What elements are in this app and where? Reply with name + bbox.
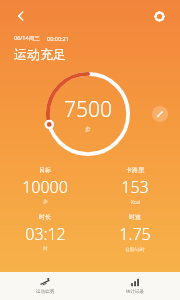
staticText: 1.75	[119, 223, 151, 245]
staticText: 步	[85, 126, 91, 133]
button[interactable]: 卡路里	[90, 166, 180, 205]
button[interactable]: 目标	[0, 166, 90, 205]
staticText: 目标	[39, 166, 51, 174]
staticText: 03:12	[25, 223, 66, 245]
button[interactable]: 统计记录	[90, 272, 180, 300]
button[interactable]: 运动监测	[0, 272, 90, 300]
staticText: 时长	[39, 213, 51, 221]
staticText: 06/14周三	[14, 34, 40, 42]
staticText: 运动监测	[36, 289, 54, 295]
staticText: Kcal	[131, 199, 140, 205]
staticText: 153	[121, 176, 149, 198]
staticText: 公里/小时	[125, 246, 145, 252]
staticText: 10000	[22, 176, 68, 198]
staticText: 步	[43, 199, 48, 205]
button[interactable]: 时速	[90, 213, 180, 252]
button[interactable]: Back	[8, 3, 34, 29]
staticText: 统计记录	[126, 289, 144, 295]
staticText: 卡路里	[126, 166, 144, 174]
staticText: 00:00:21	[47, 35, 69, 42]
staticText: 时	[43, 246, 48, 252]
staticText: 7500	[64, 95, 112, 124]
button[interactable]: 时长	[0, 213, 90, 252]
staticText: 运动充足	[14, 46, 66, 62]
staticText: 时速	[129, 213, 141, 221]
button[interactable]: Edit goal	[152, 106, 168, 122]
button[interactable]: Settings	[146, 3, 172, 29]
